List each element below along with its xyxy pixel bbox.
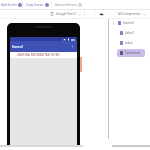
button[interactable]: Copy Screen (23, 0, 51, 9)
button[interactable]: Google Pixel 3 (50, 10, 81, 18)
button[interactable]: More options (70, 44, 75, 49)
staticText: TableView1 (125, 51, 141, 55)
staticText: Remove Screen (55, 3, 77, 7)
staticText: video (125, 41, 133, 45)
button[interactable]: Add Screen (0, 0, 22, 9)
button[interactable]: Screen1 (115, 19, 139, 27)
button[interactable]: video (117, 39, 141, 47)
button[interactable]: Remove Screen (52, 0, 85, 9)
staticText: Add Screen (1, 3, 17, 7)
staticText: Google Pixel 3 (56, 12, 76, 16)
staticText: Label1 (125, 31, 135, 35)
button[interactable]: Zoom out (84, 10, 95, 18)
button[interactable]: Expand (112, 22, 115, 25)
button[interactable]: Label1 (117, 29, 141, 37)
staticText: All Components (118, 12, 141, 16)
button[interactable]: All Components (118, 10, 146, 18)
staticText: Screen1 (12, 45, 24, 49)
staticText: Screen1 (123, 21, 135, 25)
button[interactable]: TableView1 (117, 49, 145, 57)
staticText: Copy Screen (26, 3, 44, 7)
button[interactable]: Toggle visibility (95, 10, 108, 18)
staticText: ZAVRSNA MATEMATIKA SEDMI (17, 53, 60, 57)
